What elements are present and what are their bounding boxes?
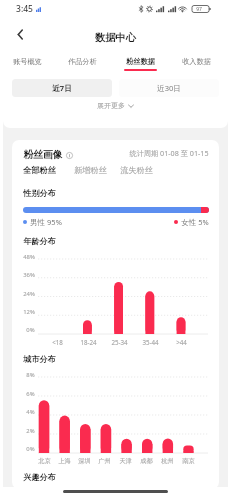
- staticText: 杭州: [161, 457, 174, 465]
- staticText: 25-34: [111, 338, 128, 346]
- staticText: 8%: [26, 371, 35, 379]
- staticText: 6%: [26, 390, 35, 398]
- staticText: 展开更多: [97, 101, 125, 110]
- button[interactable]: 流失粉丝: [120, 165, 153, 175]
- staticText: 女性 5%: [181, 217, 209, 227]
- button[interactable]: 新增粉丝: [74, 165, 107, 175]
- staticText: 统计周期 01-08 至 01-15: [129, 148, 209, 158]
- staticText: 0%: [26, 445, 35, 453]
- staticText: 35-44: [142, 338, 159, 346]
- staticText: 近7日: [52, 83, 72, 93]
- staticText: <18: [52, 338, 63, 346]
- staticText: 97: [196, 6, 202, 13]
- staticText: 12%: [23, 308, 35, 316]
- staticText: 男性 95%: [30, 217, 62, 227]
- button[interactable]: 近7日: [12, 79, 112, 97]
- staticText: 上海: [58, 457, 71, 465]
- button[interactable]: 收入数据: [169, 50, 223, 75]
- staticText: 天津: [119, 457, 132, 465]
- staticText: 作品分析: [68, 57, 97, 66]
- staticText: 粉丝数据: [126, 57, 155, 66]
- button[interactable]: 展开更多: [97, 101, 134, 110]
- staticText: 48%: [23, 253, 35, 261]
- staticText: >44: [176, 338, 187, 346]
- staticText: 成都: [140, 457, 153, 465]
- staticText: 24%: [23, 290, 35, 298]
- staticText: 近30日: [157, 83, 181, 93]
- staticText: 年龄分布: [23, 236, 56, 246]
- button[interactable]: Back: [9, 23, 31, 45]
- staticText: 城市分布: [23, 354, 56, 364]
- staticText: 数据中心: [95, 31, 136, 44]
- staticText: 兴趣分布: [23, 472, 56, 482]
- button[interactable]: 粉丝数据: [113, 50, 167, 75]
- button[interactable]: 作品分析: [55, 50, 109, 75]
- button[interactable]: 全部粉丝: [23, 165, 56, 175]
- staticText: 广州: [98, 457, 111, 465]
- staticText: 4%: [26, 408, 35, 416]
- staticText: 18-24: [80, 338, 97, 346]
- staticText: 性别分布: [23, 188, 56, 198]
- staticText: 3:45: [16, 3, 33, 15]
- staticText: 2%: [26, 427, 35, 435]
- staticText: 36%: [23, 271, 35, 279]
- staticText: 账号概览: [13, 57, 42, 66]
- button[interactable]: 近30日: [119, 79, 219, 97]
- staticText: 0%: [26, 326, 35, 334]
- button[interactable]: 账号概览: [0, 50, 54, 75]
- staticText: 粉丝画像: [23, 149, 63, 161]
- staticText: 南京: [182, 457, 195, 465]
- staticText: 深圳: [78, 457, 91, 465]
- staticText: 北京: [38, 457, 51, 465]
- staticText: 收入数据: [182, 57, 211, 66]
